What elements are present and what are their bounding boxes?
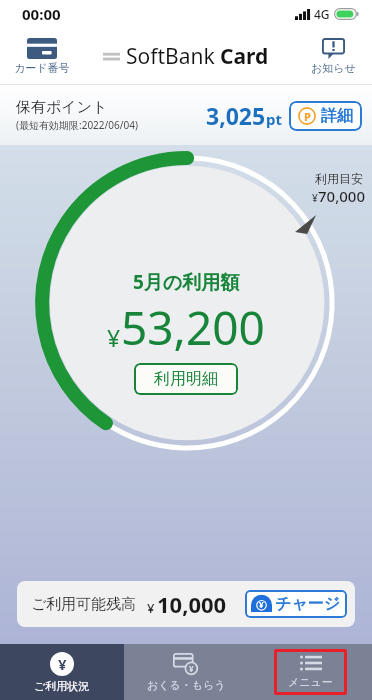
staticText: 00:00 [22, 4, 61, 24]
staticText: SoftBank [126, 42, 215, 71]
staticText: ¥ [189, 663, 194, 674]
staticText: カード番号 [14, 61, 70, 75]
staticText: 10,000 [157, 589, 227, 619]
staticText: 3,025 [206, 100, 266, 131]
staticText: 利用目安 [315, 171, 363, 186]
button[interactable]: 利用明細 [134, 363, 238, 395]
staticText: 4G [314, 6, 330, 22]
staticText: おくる・もらう [147, 678, 226, 692]
staticText: ¥ [107, 322, 121, 353]
staticText: 詳細 [321, 106, 353, 126]
button[interactable]: カード番号 [9, 36, 75, 77]
staticText: 5月の利用額 [133, 269, 240, 295]
staticText: ご利用可能残高 [31, 595, 137, 614]
button[interactable]: お知らせ [306, 36, 361, 77]
staticText: チャージ [275, 594, 341, 614]
button[interactable]: ¥ [245, 590, 347, 618]
staticText: ご利用状況 [34, 679, 90, 693]
staticText: お知らせ [311, 61, 356, 75]
button[interactable]: ¥ [124, 644, 248, 700]
staticText: P [304, 109, 311, 124]
staticText: ¥ [259, 599, 264, 610]
staticText: ¥ [312, 191, 318, 205]
staticText: 利用明細 [154, 369, 218, 389]
staticText: 保有ポイント [16, 98, 108, 117]
button[interactable]: ¥ [0, 644, 124, 700]
staticText: ¥ [58, 654, 67, 674]
staticText: メニュー [288, 675, 333, 689]
staticText: Card [220, 42, 269, 71]
button[interactable]: P [289, 101, 362, 131]
button[interactable]: ご利用可能残高 [17, 581, 355, 627]
staticText: (最短有効期限:2022/06/04) [16, 118, 138, 132]
staticText: 70,000 [318, 186, 365, 206]
staticText: pt [266, 109, 282, 129]
staticText: ¥ [147, 599, 155, 617]
button[interactable]: メニュー [274, 649, 347, 695]
staticText: 53,200 [121, 296, 265, 359]
